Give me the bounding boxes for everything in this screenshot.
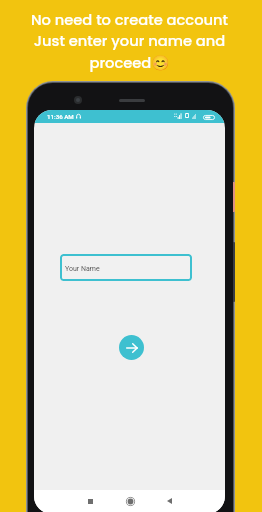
staticText: Your Name	[65, 265, 100, 273]
button[interactable]: Your Name	[60, 254, 192, 281]
button[interactable]: Back	[159, 491, 179, 511]
button[interactable]: Recents	[80, 491, 100, 511]
button[interactable]: Home	[120, 491, 140, 511]
staticText: 11:36 AM	[47, 113, 74, 120]
staticText: No need to create account Just enter you…	[0, 10, 259, 73]
button[interactable]: Proceed	[119, 335, 144, 360]
